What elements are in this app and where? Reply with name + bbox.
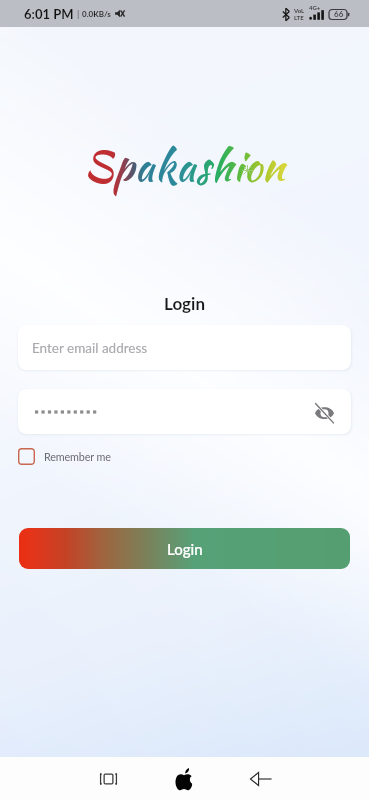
button[interactable]: Enter email address [18, 325, 351, 370]
staticText: Login [167, 540, 203, 558]
staticText: | [77, 8, 80, 19]
button[interactable]: Remember me [18, 446, 117, 467]
staticText: 66 [334, 9, 344, 19]
staticText: 0.0KB/s [82, 9, 111, 19]
staticText: LTE [294, 14, 304, 21]
staticText: Spakashion [84, 137, 286, 196]
staticText: VoL [294, 7, 305, 14]
staticText: Enter email address [32, 340, 148, 356]
button[interactable]: Home [162, 757, 206, 800]
staticText: Remember me [44, 450, 111, 463]
staticText: 4G+ [309, 4, 321, 11]
staticText: Login [164, 293, 205, 313]
button[interactable]: Back [239, 757, 283, 800]
button[interactable]: Show password [18, 389, 351, 434]
staticText: 6:01 PM [24, 6, 74, 22]
button[interactable]: Show password [309, 397, 339, 427]
button[interactable]: Login [19, 528, 350, 569]
button[interactable]: Recents [86, 757, 130, 800]
